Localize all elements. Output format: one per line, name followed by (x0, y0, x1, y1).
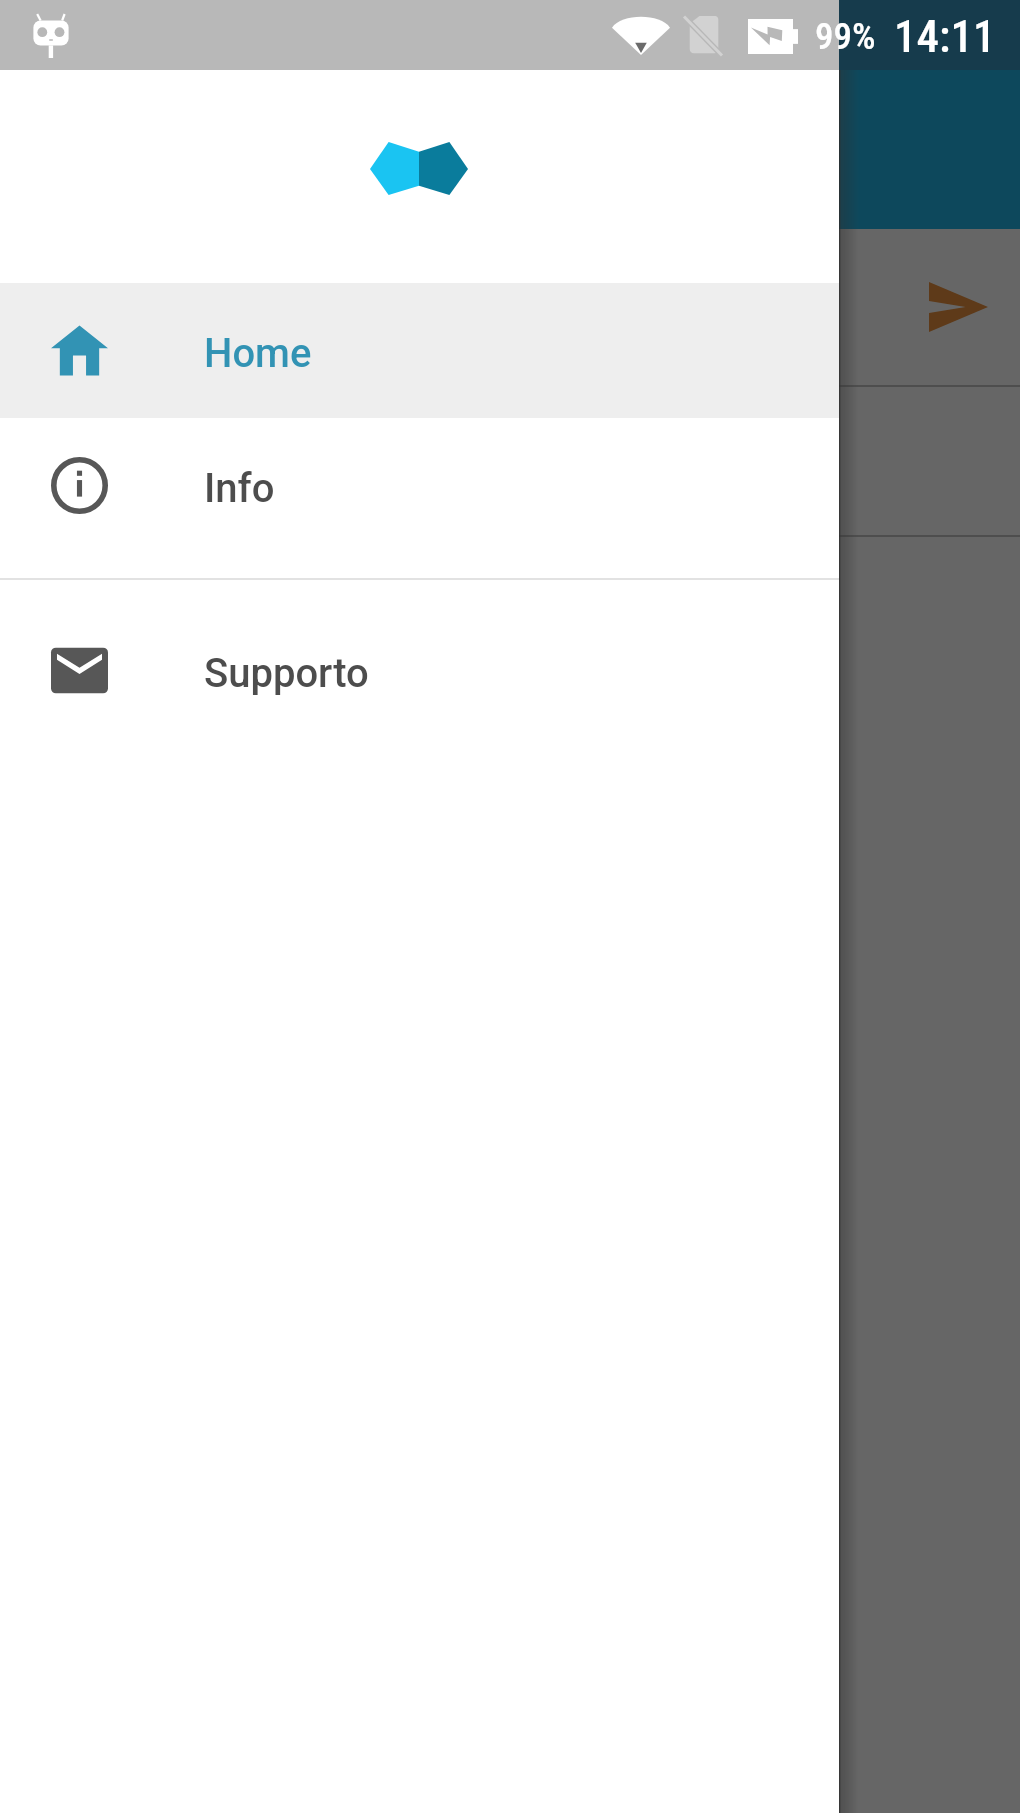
staticText: 14:11 (894, 10, 996, 63)
staticText: Supporto (204, 650, 369, 697)
button[interactable]: Supporto (0, 603, 839, 738)
staticText: 99% (815, 15, 876, 58)
button[interactable]: Home (0, 283, 839, 418)
button[interactable]: Send (917, 265, 1000, 348)
button[interactable]: Info (0, 418, 839, 553)
staticText: Info (204, 465, 275, 512)
button[interactable]: System notifications (10, 2, 92, 68)
staticText: Home (204, 330, 312, 377)
